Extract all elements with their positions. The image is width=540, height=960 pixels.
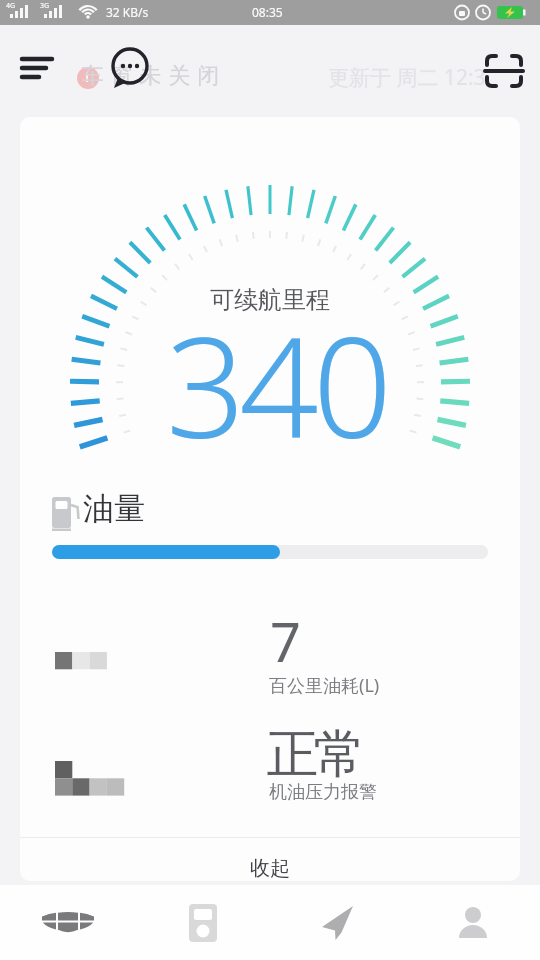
staticText: 7 <box>270 604 301 678</box>
staticText: 4G <box>6 1 16 11</box>
button[interactable] <box>106 42 154 92</box>
button[interactable] <box>135 885 270 960</box>
button[interactable] <box>478 48 530 94</box>
button[interactable]: 收起 <box>20 838 520 881</box>
button[interactable] <box>0 885 135 960</box>
staticText: 收起 <box>250 856 290 881</box>
staticText: 32 KB/s <box>106 4 149 20</box>
button[interactable] <box>10 46 64 92</box>
staticText: 可续航里程 <box>20 285 520 315</box>
staticText: 更新于 周二 12:3 <box>328 63 486 92</box>
button[interactable] <box>270 885 405 960</box>
staticText: 车窗未关闭 <box>78 62 223 90</box>
staticText: 百公里油耗(L) <box>269 673 380 698</box>
button[interactable] <box>405 885 540 960</box>
staticText: 3G <box>40 1 50 11</box>
staticText: 08:35 <box>252 4 283 20</box>
staticText: ! <box>85 66 90 86</box>
staticText: 340 <box>26 289 520 478</box>
staticText: 正常 <box>269 722 363 788</box>
staticText: 油量 <box>83 489 145 528</box>
staticText: 机油压力报警 <box>269 781 377 804</box>
